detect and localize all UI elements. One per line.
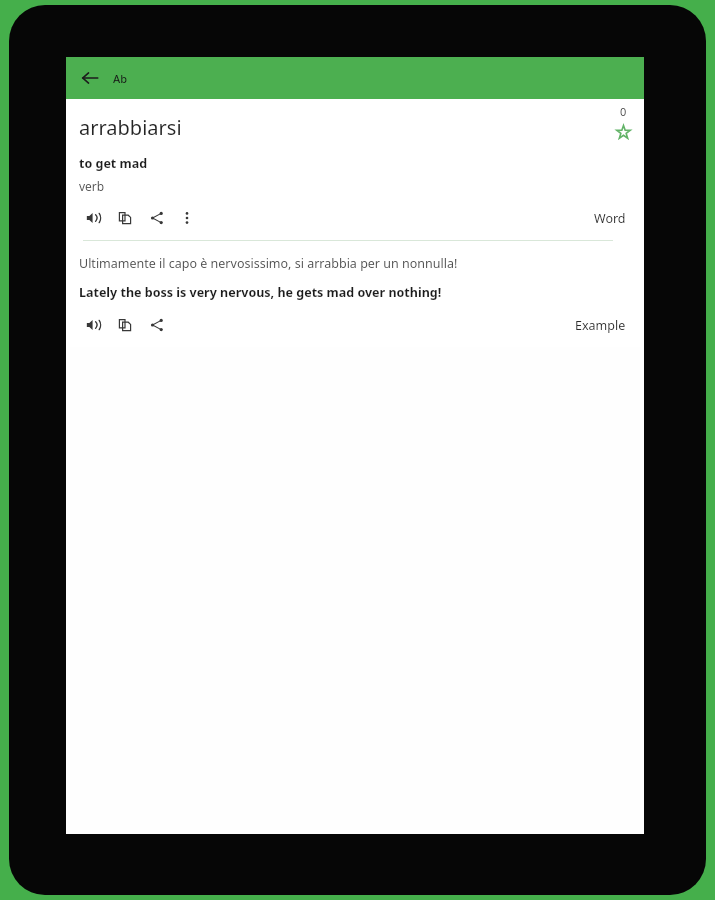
- button[interactable]: Add to favorites: [612, 121, 634, 143]
- button[interactable]: Back: [75, 63, 105, 93]
- button[interactable]: Play pronunciation: [79, 204, 107, 232]
- staticText: Ultimamente il capo è nervosissimo, si a…: [79, 255, 458, 272]
- staticText: Lately the boss is very nervous, he gets…: [79, 284, 442, 301]
- staticText: Word: [594, 210, 626, 227]
- button[interactable]: Share example: [143, 311, 171, 339]
- staticText: Ab: [113, 71, 128, 86]
- button[interactable]: Copy example: [111, 311, 139, 339]
- staticText: Example: [575, 317, 626, 334]
- staticText: to get mad: [79, 155, 148, 172]
- button[interactable]: Play example: [79, 311, 107, 339]
- staticText: arrabbiarsi: [79, 114, 182, 141]
- button[interactable]: Copy word: [111, 204, 139, 232]
- button[interactable]: More options: [173, 204, 201, 232]
- staticText: verb: [79, 178, 105, 194]
- staticText: 0: [620, 104, 627, 119]
- button[interactable]: Share word: [143, 204, 171, 232]
